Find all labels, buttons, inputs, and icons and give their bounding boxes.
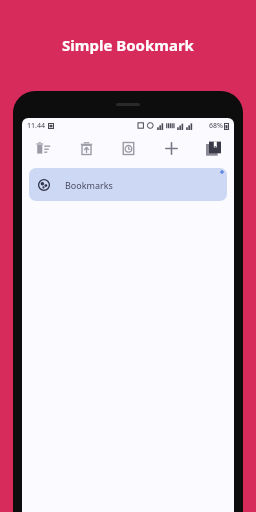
button[interactable]: Delete all <box>31 136 55 160</box>
button[interactable]: Empty trash <box>74 136 98 160</box>
button[interactable]: Bookmarks <box>29 168 227 201</box>
button[interactable]: Bookmark library <box>201 136 225 160</box>
staticText: 11.44 <box>27 121 45 131</box>
button[interactable]: Add bookmark <box>159 136 183 160</box>
staticText: 68% <box>209 121 223 131</box>
button[interactable]: History <box>116 136 140 160</box>
staticText: Simple Bookmark <box>62 35 194 55</box>
staticText: Bookmarks <box>65 179 113 191</box>
